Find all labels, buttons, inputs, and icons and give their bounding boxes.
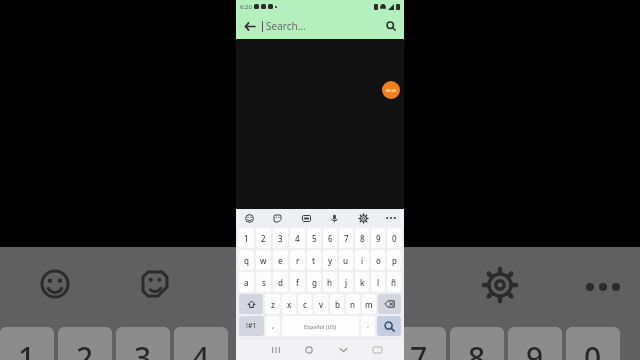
button[interactable]: 1 xyxy=(239,228,254,248)
staticText: 1 xyxy=(244,233,249,244)
staticText: 3 xyxy=(278,233,283,244)
button[interactable]: o xyxy=(371,250,385,270)
button[interactable]: b xyxy=(330,294,344,314)
staticText: m xyxy=(365,299,373,310)
button[interactable]: Back xyxy=(236,13,262,39)
button[interactable]: Switch keyboard xyxy=(360,340,394,360)
staticText: Search... xyxy=(266,19,306,33)
staticText: z xyxy=(271,299,275,310)
button[interactable]: Español (US) xyxy=(282,316,359,336)
button[interactable]: j xyxy=(339,272,353,292)
button[interactable]: k xyxy=(355,272,369,292)
button[interactable]: 0 xyxy=(387,228,401,248)
button[interactable]: t xyxy=(307,250,321,270)
button[interactable]: Hide keyboard xyxy=(326,340,360,360)
staticText: k xyxy=(360,277,365,288)
staticText: h xyxy=(327,277,333,288)
button[interactable]: Search... xyxy=(262,13,378,39)
button[interactable]: c xyxy=(298,294,312,314)
button[interactable]: m xyxy=(362,294,376,314)
staticText: 8 xyxy=(360,233,365,244)
button[interactable]: d xyxy=(273,272,288,292)
button[interactable]: 5 xyxy=(307,228,321,248)
staticText: b xyxy=(335,299,340,310)
staticText: p xyxy=(392,255,397,266)
button[interactable]: n xyxy=(346,294,360,314)
button[interactable]: e xyxy=(273,250,288,270)
button[interactable]: Stickers xyxy=(268,209,286,227)
staticText: 9 xyxy=(376,233,381,244)
staticText: g xyxy=(312,277,317,288)
staticText: 5 xyxy=(312,233,317,244)
staticText: l xyxy=(377,277,380,288)
button[interactable]: Emoji xyxy=(240,209,258,227)
staticText: a xyxy=(244,277,249,288)
staticText: n xyxy=(350,299,356,310)
staticText: c xyxy=(303,299,307,310)
button[interactable]: More options xyxy=(382,209,400,227)
button[interactable]: 05:48 xyxy=(382,81,400,99)
staticText: 7 xyxy=(344,233,349,244)
staticText: s xyxy=(262,277,266,288)
button[interactable]: Search xyxy=(378,13,404,39)
staticText: 7 xyxy=(410,337,428,360)
button[interactable]: g xyxy=(307,272,321,292)
staticText: j xyxy=(345,277,348,288)
staticText: . xyxy=(367,321,369,331)
staticText: q xyxy=(244,255,249,266)
button[interactable]: 7 xyxy=(339,228,353,248)
button[interactable]: !#1 xyxy=(239,316,264,336)
staticText: Español (US) xyxy=(304,323,337,330)
staticText: 9 xyxy=(526,337,544,360)
staticText: o xyxy=(376,255,381,266)
staticText: 6 xyxy=(328,233,333,244)
staticText: 2 xyxy=(76,337,94,360)
button[interactable]: Search xyxy=(377,316,401,336)
button[interactable]: p xyxy=(387,250,401,270)
button[interactable]: a xyxy=(239,272,254,292)
button[interactable]: Clipboard xyxy=(297,209,315,227)
button[interactable]: q xyxy=(239,250,254,270)
button[interactable]: Shift xyxy=(239,294,263,314)
button[interactable]: Recent apps xyxy=(259,340,292,360)
staticText: t xyxy=(312,255,316,266)
button[interactable]: f xyxy=(290,272,305,292)
staticText: 4 xyxy=(295,233,300,244)
button[interactable]: u xyxy=(339,250,353,270)
button[interactable]: Settings xyxy=(354,209,372,227)
button[interactable]: y xyxy=(323,250,337,270)
staticText: y xyxy=(328,255,333,266)
button[interactable]: Voice input xyxy=(325,209,343,227)
button[interactable]: 4 xyxy=(290,228,305,248)
button[interactable]: 9 xyxy=(371,228,385,248)
staticText: ñ xyxy=(391,277,397,288)
button[interactable]: s xyxy=(256,272,271,292)
button[interactable]: v xyxy=(314,294,328,314)
button[interactable]: 2 xyxy=(256,228,271,248)
button[interactable]: r xyxy=(290,250,305,270)
staticText: , xyxy=(272,321,274,331)
staticText: u xyxy=(343,255,349,266)
button[interactable]: , xyxy=(266,316,280,336)
staticText: 1 xyxy=(18,337,36,360)
button[interactable]: Home xyxy=(292,340,326,360)
button[interactable]: l xyxy=(371,272,385,292)
staticText: 05:48 xyxy=(386,88,397,93)
button[interactable]: z xyxy=(265,294,280,314)
button[interactable]: x xyxy=(282,294,296,314)
button[interactable]: 8 xyxy=(355,228,369,248)
staticText: v xyxy=(319,299,324,310)
button[interactable]: ñ xyxy=(387,272,401,292)
button[interactable]: . xyxy=(361,316,375,336)
button[interactable]: i xyxy=(355,250,369,270)
button[interactable]: Backspace xyxy=(378,294,401,314)
staticText: 3 xyxy=(134,337,152,360)
staticText: !#1 xyxy=(246,321,257,331)
button[interactable]: w xyxy=(256,250,271,270)
staticText: 4 xyxy=(192,337,210,360)
button[interactable]: h xyxy=(323,272,337,292)
staticText: 0 xyxy=(392,233,397,244)
button[interactable]: 3 xyxy=(273,228,288,248)
button[interactable]: 6 xyxy=(323,228,337,248)
staticText: f xyxy=(296,277,299,288)
